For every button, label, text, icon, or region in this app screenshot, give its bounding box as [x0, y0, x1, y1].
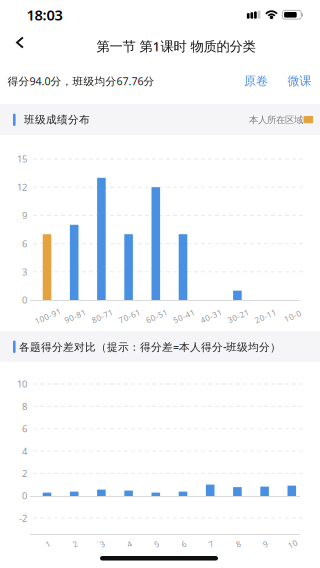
staticText: 7 — [209, 539, 214, 549]
staticText: 2 — [22, 467, 27, 480]
button[interactable]: 微课 — [281, 69, 317, 93]
staticText: 6 — [181, 539, 186, 549]
staticText: 得分94.0分，班级均分67.76分 — [7, 74, 154, 88]
staticText: 6 — [22, 422, 27, 435]
staticText: 9 — [22, 209, 27, 222]
staticText: 2 — [73, 539, 78, 549]
staticText: 30-21 — [227, 311, 250, 321]
staticText: 0 — [22, 489, 27, 502]
button[interactable]: 返回 — [0, 26, 41, 58]
staticText: 60-51 — [145, 311, 168, 321]
staticText: 80-71 — [91, 311, 114, 321]
staticText: 10 — [17, 378, 27, 390]
staticText: 6 — [22, 237, 27, 250]
staticText: 0 — [22, 294, 27, 306]
staticText: 本人所在区域 — [249, 114, 303, 126]
staticText: 4 — [127, 539, 132, 549]
staticText: 18:03 — [26, 5, 62, 25]
staticText: 微课 — [287, 74, 311, 88]
staticText: 3 — [22, 266, 27, 278]
staticText: 第一节 第1课时 物质的分类 — [96, 37, 255, 55]
staticText: 50-41 — [172, 311, 195, 321]
staticText: 100-91 — [34, 311, 62, 321]
staticText: 8 — [236, 539, 241, 549]
staticText: 班级成绩分布 — [24, 113, 90, 126]
staticText: 12 — [17, 181, 27, 193]
staticText: 40-31 — [200, 311, 223, 321]
staticText: 20-11 — [254, 311, 277, 321]
staticText: 8 — [22, 400, 27, 412]
button[interactable]: 原卷 — [238, 69, 274, 93]
staticText: 90-81 — [64, 311, 87, 321]
staticText: 15 — [17, 153, 27, 165]
staticText: 10 — [288, 539, 298, 549]
staticText: 1 — [45, 539, 50, 549]
staticText: 原卷 — [244, 74, 268, 88]
staticText: -2 — [19, 512, 27, 524]
staticText: 3 — [100, 539, 105, 549]
staticText: 5 — [154, 539, 159, 549]
staticText: 4 — [22, 445, 27, 457]
staticText: 70-61 — [118, 311, 141, 321]
staticText: 10-0 — [284, 311, 302, 321]
staticText: 各题得分差对比（提示：得分差=本人得分-班级均分） — [19, 340, 281, 354]
staticText: 9 — [263, 539, 268, 549]
